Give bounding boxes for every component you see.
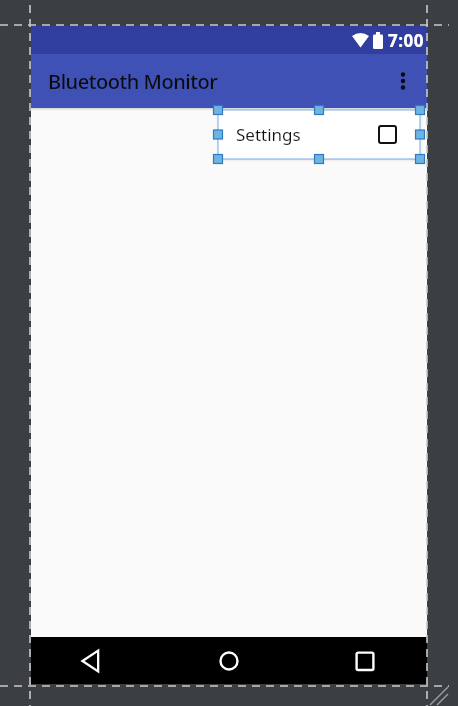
button[interactable]: Settings (218, 110, 420, 159)
button[interactable] (78, 647, 106, 675)
button[interactable] (215, 647, 243, 675)
button[interactable] (389, 67, 417, 95)
staticText: Bluetooth Monitor (48, 68, 218, 95)
button[interactable] (378, 125, 397, 144)
staticText: 7:00 (388, 29, 424, 52)
staticText: Settings (236, 123, 301, 146)
button[interactable] (351, 647, 379, 675)
